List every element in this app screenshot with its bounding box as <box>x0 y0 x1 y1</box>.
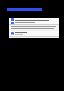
button[interactable]: Document <box>10 18 58 24</box>
button[interactable]: Attachment <box>10 31 58 36</box>
other: Attachment <box>11 32 14 35</box>
